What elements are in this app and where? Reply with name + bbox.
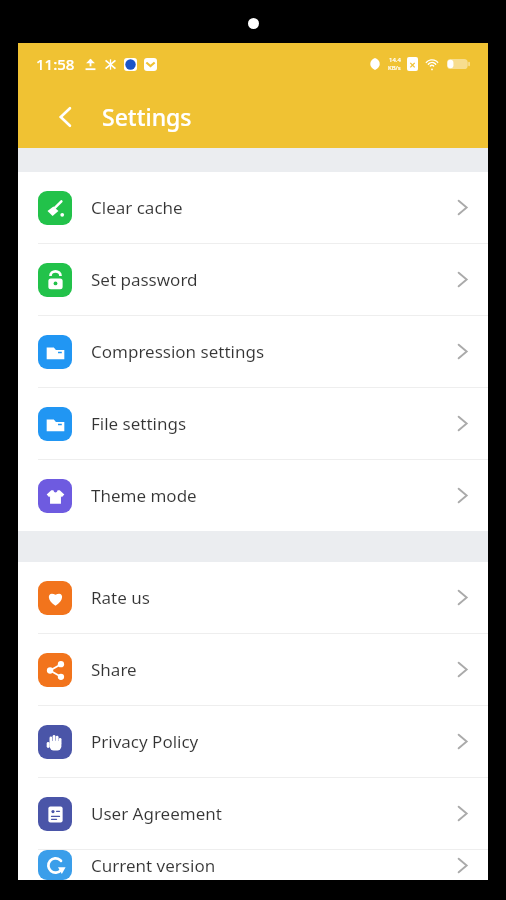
staticText: Privacy Policy bbox=[91, 730, 457, 753]
staticText: Current version bbox=[91, 854, 457, 877]
button[interactable]: File settings bbox=[18, 388, 488, 459]
staticText: 14.4 bbox=[389, 56, 401, 64]
staticText: 11:58 bbox=[36, 54, 75, 74]
staticText: Settings bbox=[102, 101, 192, 132]
button[interactable]: Privacy Policy bbox=[18, 706, 488, 777]
button[interactable]: Back bbox=[48, 99, 84, 135]
staticText: Rate us bbox=[91, 586, 457, 609]
button[interactable]: User Agreement bbox=[18, 778, 488, 849]
button[interactable]: Clear cache bbox=[18, 172, 488, 243]
button[interactable]: Current version bbox=[18, 850, 488, 880]
staticText: User Agreement bbox=[91, 802, 457, 825]
staticText: Theme mode bbox=[91, 484, 457, 507]
button[interactable]: Compression settings bbox=[18, 316, 488, 387]
button[interactable]: Set password bbox=[18, 244, 488, 315]
staticText: Compression settings bbox=[91, 340, 457, 363]
staticText: File settings bbox=[91, 412, 457, 435]
button[interactable]: Rate us bbox=[18, 562, 488, 633]
staticText: Share bbox=[91, 658, 457, 681]
button[interactable]: Theme mode bbox=[18, 460, 488, 531]
staticText: KB/s bbox=[388, 64, 401, 72]
button[interactable]: Share bbox=[18, 634, 488, 705]
staticText: Clear cache bbox=[91, 196, 457, 219]
staticText: Set password bbox=[91, 268, 457, 291]
